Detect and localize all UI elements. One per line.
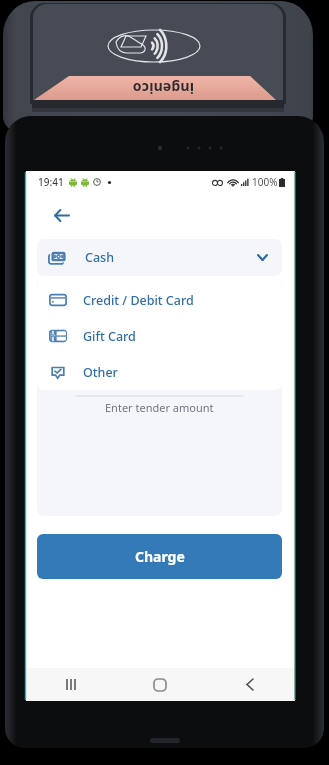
- staticText: Other: [83, 364, 118, 381]
- button[interactable]: Home: [115, 668, 205, 701]
- button[interactable]: Credit / Debit Card: [37, 282, 282, 318]
- staticText: 19:41: [38, 175, 64, 189]
- staticText: 100%: [252, 175, 278, 189]
- button[interactable]: Back: [205, 668, 295, 701]
- button[interactable]: Gift Card: [37, 318, 282, 354]
- staticText: Cash: [85, 249, 115, 266]
- staticText: ingenico: [132, 79, 194, 98]
- button[interactable]: Other: [37, 354, 282, 390]
- staticText: Gift Card: [83, 328, 136, 345]
- button[interactable]: Back: [46, 200, 76, 230]
- button[interactable]: Recents: [26, 668, 115, 701]
- button[interactable]: Charge: [37, 534, 282, 579]
- staticText: Charge: [135, 547, 185, 566]
- button[interactable]: Cash: [37, 239, 282, 276]
- staticText: Enter tender amount: [105, 400, 214, 415]
- staticText: Credit / Debit Card: [83, 292, 194, 309]
